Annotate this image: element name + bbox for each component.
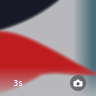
button[interactable]: Timer — [11, 77, 25, 89]
staticText: 3s — [13, 78, 22, 88]
button[interactable]: Take photo — [70, 75, 86, 91]
